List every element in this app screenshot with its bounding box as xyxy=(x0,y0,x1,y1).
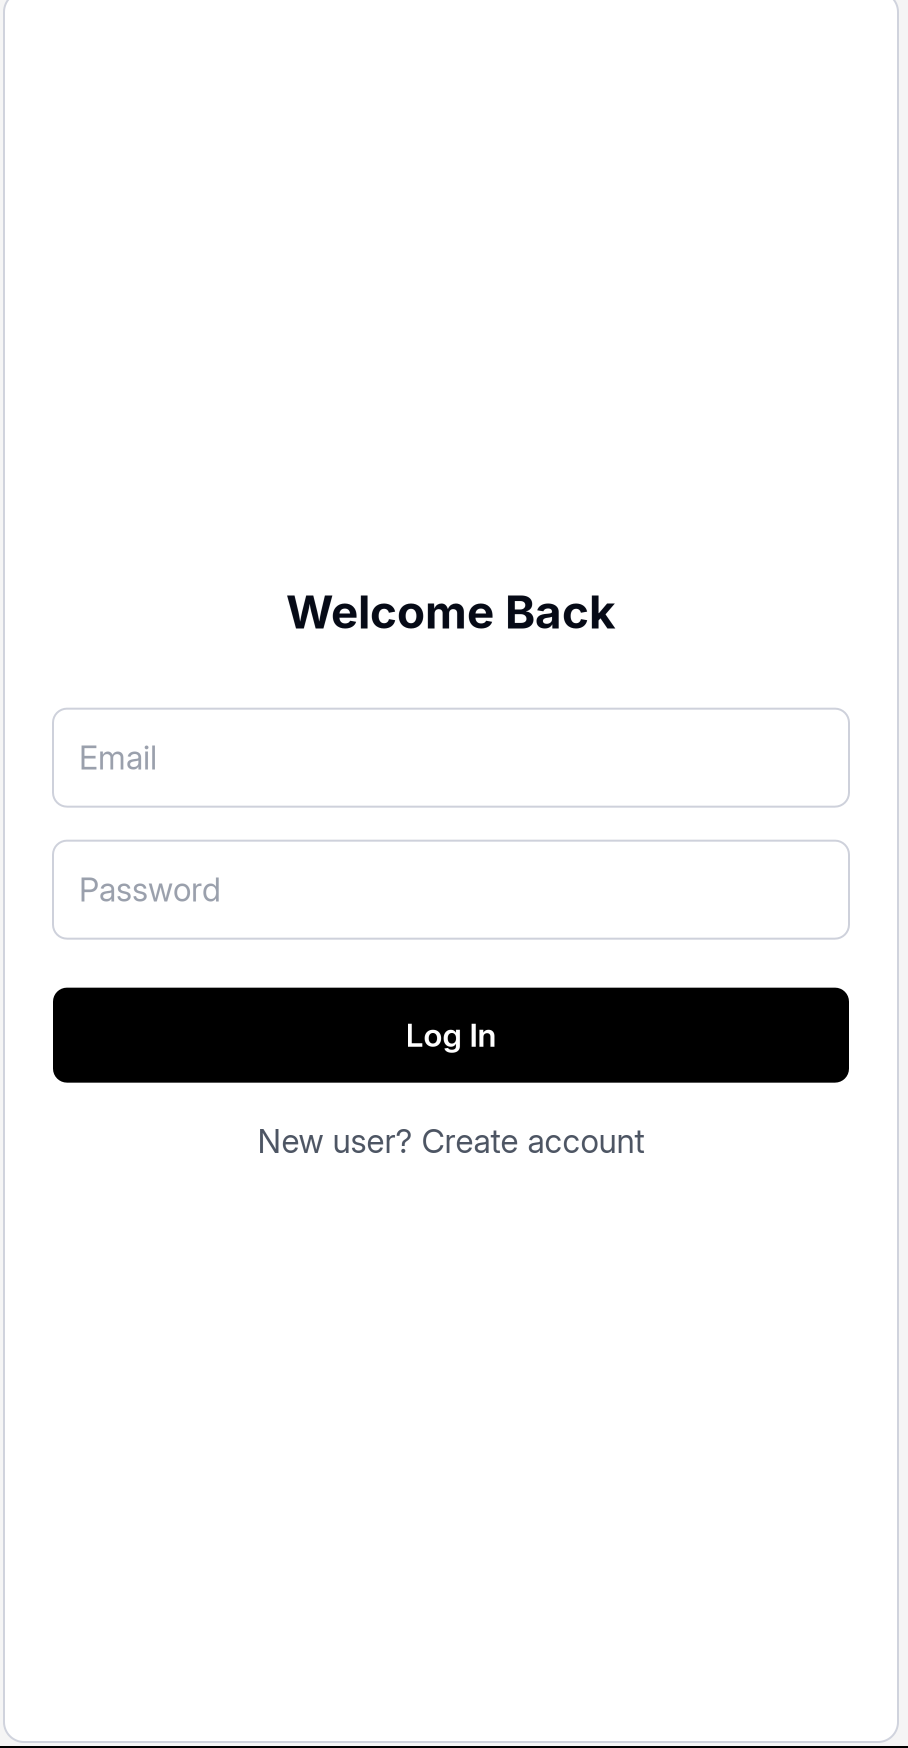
button[interactable]: Password xyxy=(53,841,849,939)
textField[interactable]: Email xyxy=(53,709,849,807)
staticText: Welcome Back xyxy=(286,584,616,640)
button[interactable]: Email xyxy=(53,709,849,807)
staticText: Log In xyxy=(405,1016,496,1054)
staticText: New user? Create account xyxy=(257,1122,644,1161)
secureTextField[interactable]: Password xyxy=(53,841,849,939)
staticText: Email xyxy=(79,738,157,777)
button[interactable]: Log In xyxy=(53,988,849,1083)
staticText: Password xyxy=(79,870,221,909)
button[interactable]: New user? Create account xyxy=(257,1122,644,1161)
